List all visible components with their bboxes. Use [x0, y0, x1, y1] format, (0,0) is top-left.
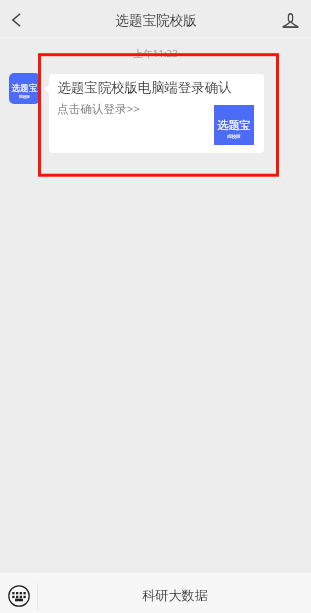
staticText: 上午11:23 — [133, 47, 178, 60]
staticText: 选题宝 — [11, 83, 38, 94]
button[interactable]: Keyboard — [0, 573, 37, 613]
staticText: 点击确认登录>> — [57, 101, 140, 117]
staticText: 选题宝院校版电脑端登录确认 — [57, 79, 232, 96]
button[interactable]: Back — [0, 0, 33, 39]
button[interactable]: Account avatar — [9, 73, 40, 104]
button[interactable]: 选题宝院校版电脑端登录确认 — [49, 74, 264, 153]
staticText: 选题宝院校版 — [115, 12, 197, 29]
staticText: 院校版 — [19, 95, 30, 100]
staticText: 院校版 — [227, 134, 241, 140]
staticText: 科研大数据 — [142, 587, 208, 604]
staticText: 选题宝 — [217, 118, 251, 132]
button[interactable]: Contact profile — [273, 0, 311, 39]
button[interactable]: 科研大数据 — [38, 573, 311, 613]
